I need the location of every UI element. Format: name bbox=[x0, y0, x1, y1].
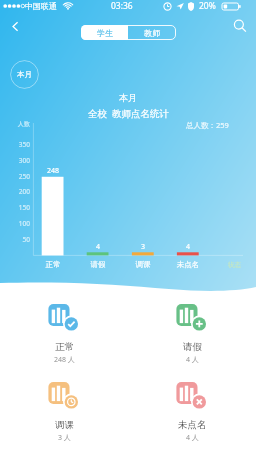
staticText: 4 bbox=[86, 242, 110, 252]
staticText: 200 bbox=[12, 187, 30, 196]
button[interactable]: 正常 bbox=[0, 296, 128, 374]
staticText: 03:36 bbox=[111, 0, 133, 12]
staticText: 正常 bbox=[55, 341, 74, 353]
button[interactable]: 本月 bbox=[10, 60, 39, 89]
staticText: 248 人 bbox=[54, 355, 75, 365]
staticText: 250 bbox=[12, 172, 30, 181]
staticText: 4 人 bbox=[186, 433, 199, 443]
staticText: 3 人 bbox=[58, 433, 71, 443]
staticText: 中国联通 bbox=[25, 1, 57, 11]
staticText: 50 bbox=[12, 235, 30, 244]
button[interactable]: 学生 bbox=[81, 25, 128, 40]
staticText: 20% bbox=[199, 0, 216, 12]
staticText: 350 bbox=[12, 140, 30, 149]
staticText: 学生 bbox=[97, 28, 113, 38]
staticText: 总人数：259 bbox=[186, 120, 229, 130]
staticText: 300 bbox=[12, 156, 30, 165]
button[interactable]: 未点名 bbox=[128, 374, 256, 452]
staticText: 请假 bbox=[82, 260, 114, 269]
button[interactable]: 教师 bbox=[128, 25, 176, 40]
staticText: 状态 bbox=[228, 261, 241, 269]
staticText: 3 bbox=[131, 242, 155, 252]
staticText: 调课 bbox=[55, 419, 74, 431]
staticText: 4 人 bbox=[186, 355, 199, 365]
staticText: 调课 bbox=[127, 260, 159, 269]
staticText: 4 bbox=[176, 242, 200, 252]
staticText: 248 bbox=[41, 166, 65, 176]
staticText: 未点名 bbox=[172, 260, 204, 269]
staticText: 100 bbox=[12, 219, 30, 228]
button[interactable]: Back bbox=[4, 15, 26, 37]
staticText: 本月 bbox=[17, 70, 32, 79]
staticText: 未点名 bbox=[178, 419, 207, 431]
staticText: 请假 bbox=[183, 341, 202, 353]
staticText: 本月 bbox=[119, 92, 137, 103]
staticText: 人数 bbox=[18, 120, 30, 128]
button[interactable]: 调课 bbox=[0, 374, 128, 452]
button[interactable]: Search bbox=[229, 15, 251, 37]
staticText: 正常 bbox=[37, 260, 69, 269]
button[interactable]: 请假 bbox=[128, 296, 256, 374]
staticText: 150 bbox=[12, 203, 30, 212]
staticText: 教师 bbox=[144, 28, 160, 38]
staticText: 全校 教师点名统计 bbox=[88, 107, 169, 120]
